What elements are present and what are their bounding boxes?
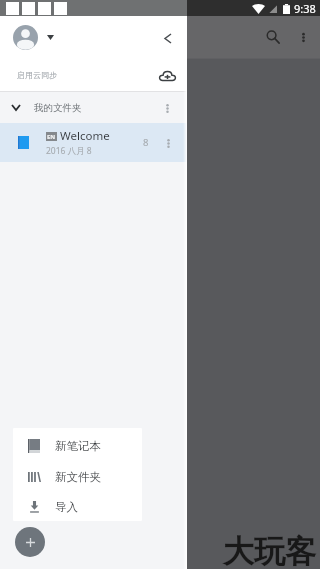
button[interactable]: Search bbox=[257, 21, 289, 53]
button[interactable]: 我的文件夹 bbox=[0, 92, 187, 123]
staticText: 2016 八月 8 bbox=[46, 145, 92, 157]
button[interactable]: 导入 bbox=[13, 492, 142, 521]
button[interactable]: Add bbox=[15, 527, 45, 557]
button[interactable] bbox=[0, 25, 60, 50]
button[interactable]: More options bbox=[289, 23, 317, 51]
button[interactable]: Note options bbox=[158, 133, 178, 153]
button[interactable]: Collapse drawer bbox=[153, 23, 183, 53]
button[interactable]: EN bbox=[0, 123, 187, 162]
staticText: 8 bbox=[143, 136, 149, 149]
staticText: 启用云同步 bbox=[17, 70, 57, 80]
staticText: 大玩客 bbox=[223, 532, 316, 569]
staticText: Welcome bbox=[60, 128, 110, 144]
staticText: EN bbox=[47, 133, 56, 141]
button[interactable]: 新文件夹 bbox=[13, 461, 142, 492]
button[interactable]: 启用云同步 bbox=[0, 59, 187, 91]
staticText: 新文件夹 bbox=[55, 470, 101, 484]
staticText: 我的文件夹 bbox=[34, 102, 82, 114]
button[interactable]: Folder options bbox=[157, 98, 177, 118]
button[interactable]: 新笔记本 bbox=[13, 430, 142, 461]
staticText: 新笔记本 bbox=[55, 439, 101, 453]
staticText: 导入 bbox=[55, 500, 78, 514]
staticText: 9:38 bbox=[294, 1, 316, 16]
